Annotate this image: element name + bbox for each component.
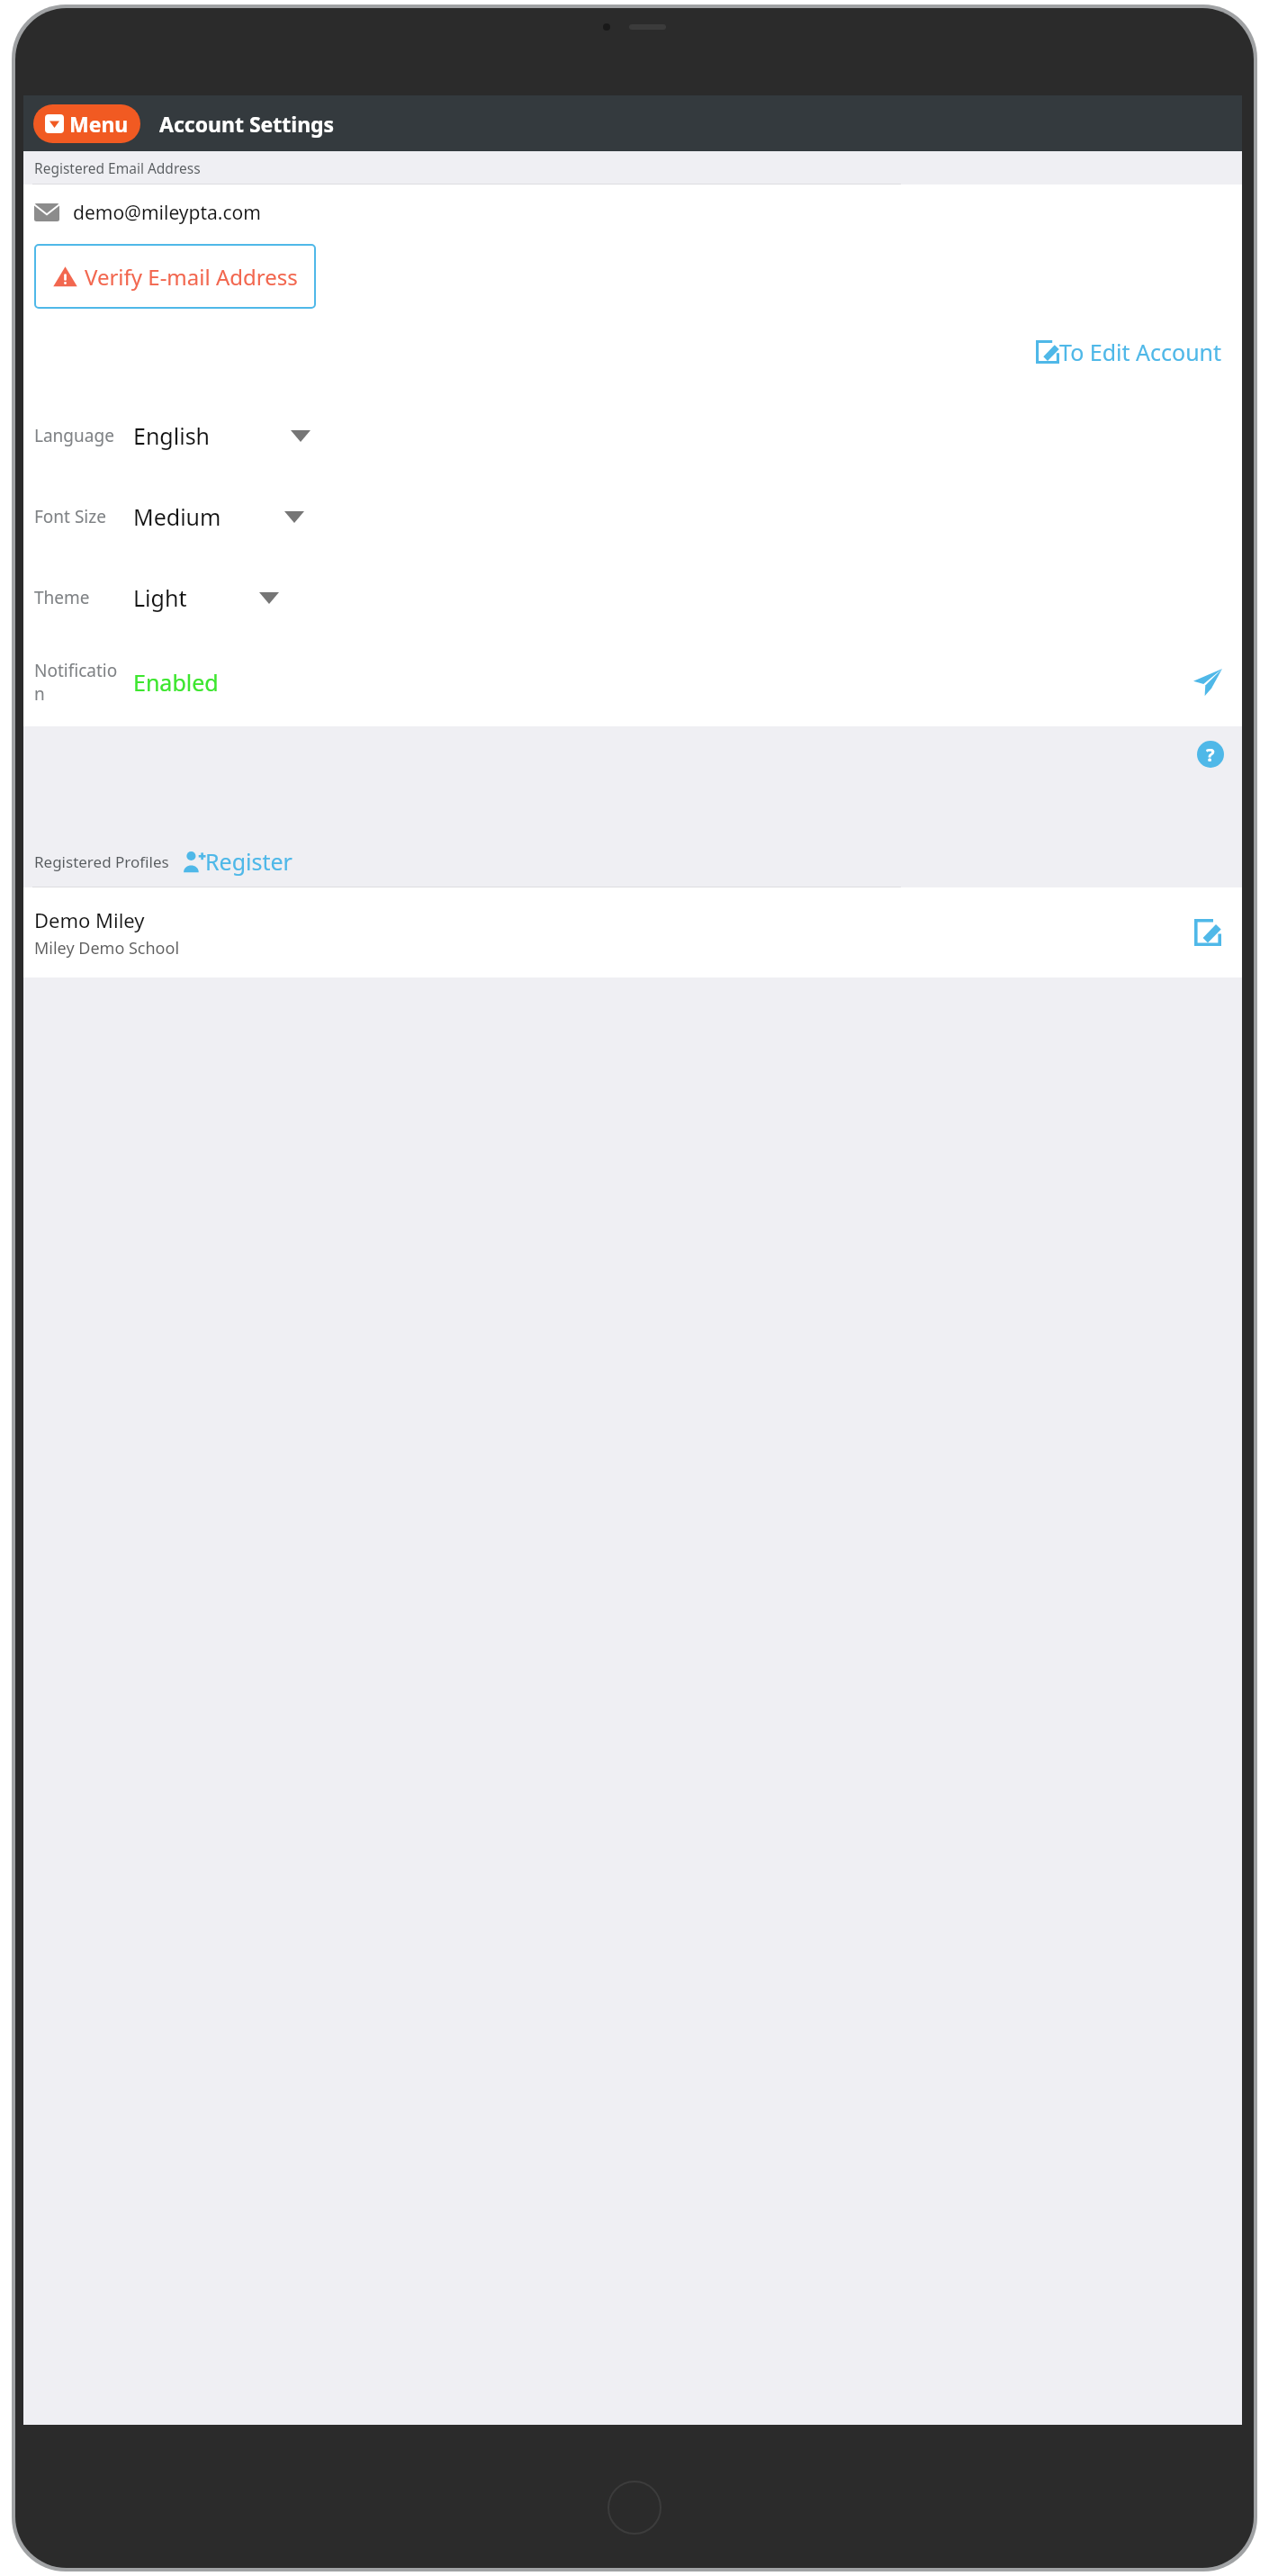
staticText: Language: [34, 424, 114, 447]
staticText: Registered Profiles: [34, 851, 169, 872]
staticText: Light: [133, 582, 187, 613]
button[interactable]: Font Size: [23, 476, 1242, 557]
staticText: Font Size: [34, 505, 106, 528]
button[interactable]: Register: [182, 846, 292, 877]
button[interactable]: Notification: [23, 638, 1242, 726]
staticText: Enabled: [133, 667, 219, 698]
staticText: ?: [1206, 743, 1215, 767]
staticText: demo@mileypta.com: [73, 200, 261, 226]
staticText: Miley Demo School: [34, 937, 180, 959]
staticText: Register: [205, 846, 292, 877]
staticText: Medium: [133, 501, 221, 532]
button[interactable]: Language: [23, 395, 1242, 476]
button[interactable]: Send notification test: [1190, 664, 1226, 700]
button[interactable]: Help: [1195, 739, 1226, 770]
button[interactable]: Edit profile: [1190, 914, 1226, 950]
staticText: English: [133, 420, 211, 451]
staticText: Registered Email Address: [34, 158, 201, 177]
staticText: Notification: [34, 659, 124, 706]
staticText: Theme: [34, 586, 90, 609]
button[interactable]: Demo Miley: [23, 887, 1242, 977]
button[interactable]: Menu: [33, 104, 140, 143]
button[interactable]: To Edit Account: [1036, 337, 1242, 367]
staticText: Account Settings: [159, 110, 335, 138]
staticText: Demo Miley: [34, 906, 145, 933]
button[interactable]: Theme: [23, 557, 1242, 638]
staticText: Verify E-mail Address: [85, 262, 298, 292]
staticText: To Edit Account: [1059, 337, 1222, 367]
button[interactable]: Verify E-mail Address: [34, 244, 316, 309]
staticText: Menu: [69, 110, 129, 138]
button[interactable]: demo@mileypta.com: [23, 185, 1242, 240]
